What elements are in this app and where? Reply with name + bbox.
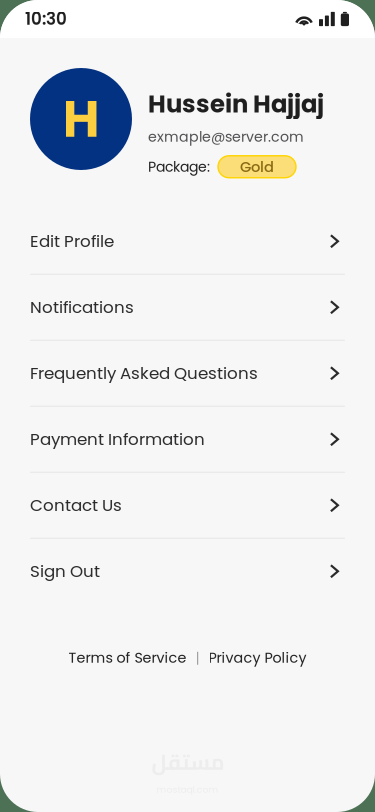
- staticText: |: [195, 648, 199, 668]
- button[interactable]: Edit Profile: [0, 209, 375, 274]
- button[interactable]: Gold: [218, 156, 296, 178]
- staticText: Gold: [240, 156, 274, 177]
- button[interactable]: Notifications: [0, 275, 375, 340]
- button[interactable]: Sign Out: [0, 539, 375, 604]
- staticText: Package:: [148, 157, 210, 177]
- staticText: 10:30: [25, 7, 67, 31]
- button[interactable]: Terms of Service: [68, 648, 186, 668]
- staticText: Notifications: [30, 296, 134, 319]
- staticText: Edit Profile: [30, 230, 114, 253]
- button[interactable]: Contact Us: [0, 473, 375, 538]
- staticText: Sign Out: [30, 560, 100, 583]
- staticText: Privacy Policy: [208, 648, 306, 668]
- staticText: Terms of Service: [68, 648, 186, 668]
- button[interactable]: Payment Information: [0, 407, 375, 472]
- staticText: Frequently Asked Questions: [30, 362, 258, 385]
- staticText: Payment Information: [30, 428, 205, 451]
- staticText: Contact Us: [30, 494, 122, 517]
- staticText: exmaple@server.com: [148, 127, 304, 147]
- button[interactable]: Privacy Policy: [208, 648, 306, 668]
- staticText: Hussein Hajjaj: [148, 87, 324, 121]
- staticText: مستقل: [151, 742, 224, 782]
- button[interactable]: Frequently Asked Questions: [0, 341, 375, 406]
- staticText: H: [62, 83, 99, 154]
